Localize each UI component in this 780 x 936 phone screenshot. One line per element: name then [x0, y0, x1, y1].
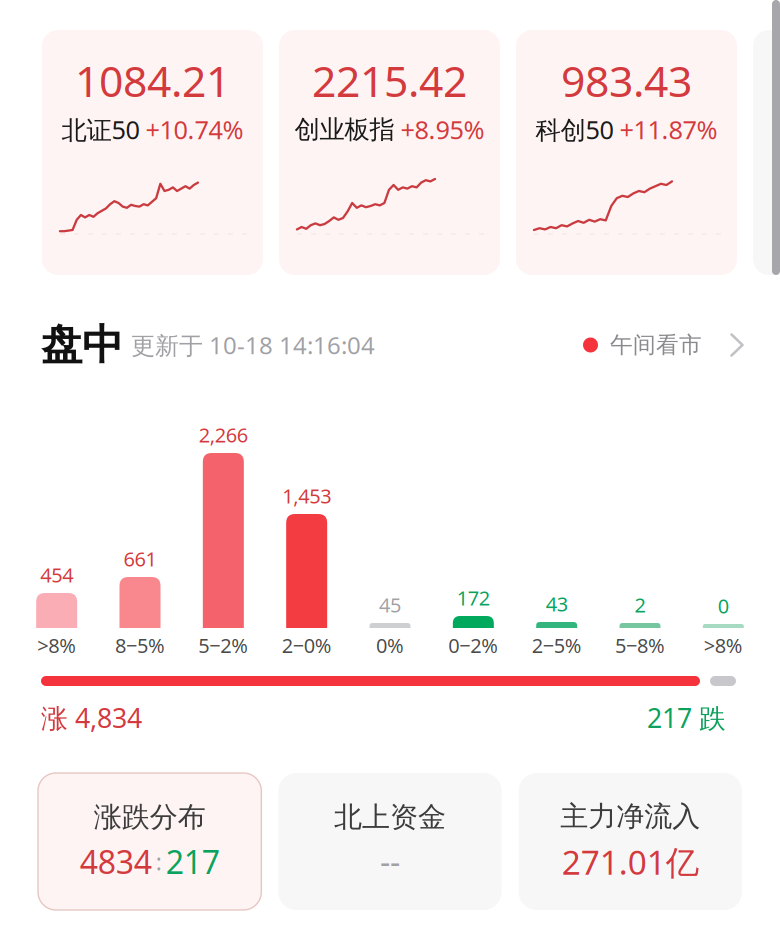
staticText: 更新于 10-18 14:16:04	[131, 329, 375, 361]
staticText: 0%	[376, 632, 404, 659]
staticText: 北证50	[61, 113, 139, 146]
staticText: 主力净流入	[560, 799, 700, 834]
button[interactable]: 午间看市	[583, 331, 744, 359]
staticText: 217 跌	[647, 700, 726, 735]
staticText: 涨 4,834	[41, 700, 142, 735]
staticText: 1,453	[282, 482, 331, 509]
staticText: 4834	[80, 840, 152, 883]
staticText: 2	[634, 591, 645, 618]
staticText: +10.74%	[145, 113, 243, 146]
staticText: 北上资金	[334, 800, 446, 834]
staticText: +8.95%	[400, 113, 484, 146]
staticText: 0	[718, 592, 729, 619]
staticText: 涨跌分布	[94, 800, 206, 834]
staticText: 271.01亿	[562, 840, 699, 884]
button[interactable]: 北上资金	[278, 773, 502, 910]
staticText: >8%	[704, 632, 743, 659]
staticText: >8%	[37, 632, 76, 659]
button[interactable]: 涨跌分布	[38, 773, 261, 910]
staticText: 45	[379, 591, 401, 618]
staticText: 661	[123, 545, 156, 572]
staticText: :	[156, 847, 162, 877]
staticText: 217	[166, 840, 220, 883]
staticText: 8−5%	[115, 632, 165, 659]
staticText: 172	[457, 584, 490, 611]
staticText: 盘中	[41, 320, 123, 370]
button[interactable]: 1084.21	[42, 30, 263, 275]
staticText: 创业板指	[294, 114, 394, 145]
staticText: 2−0%	[282, 632, 332, 659]
staticText: 454	[40, 561, 73, 588]
staticText: 5−2%	[198, 632, 248, 659]
staticText: 午间看市	[610, 331, 702, 359]
button[interactable]: 主力净流入	[519, 773, 742, 910]
staticText: 2,266	[199, 421, 248, 448]
staticText: +11.87%	[619, 113, 717, 146]
staticText: 43	[546, 590, 568, 617]
staticText: 0−2%	[448, 632, 498, 659]
staticText: 2−5%	[532, 632, 582, 659]
staticText: 科创50	[535, 113, 613, 146]
staticText: 5−8%	[615, 632, 665, 659]
staticText: 983.43	[561, 52, 692, 109]
staticText: 1084.21	[75, 52, 230, 109]
staticText: 2215.42	[312, 52, 467, 109]
staticText: --	[380, 840, 400, 883]
button[interactable]: 983.43	[516, 30, 737, 275]
button[interactable]: 2215.42	[279, 30, 500, 275]
